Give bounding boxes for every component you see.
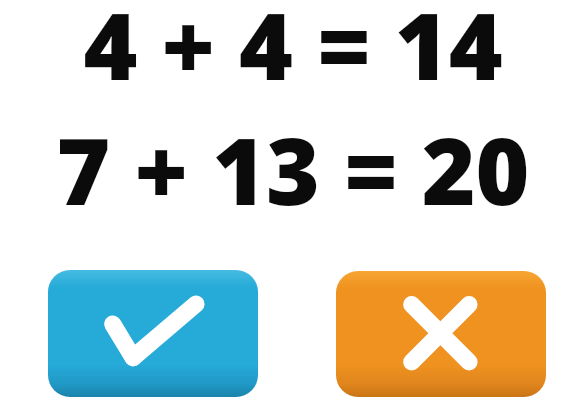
button[interactable]: Correct [48, 270, 258, 397]
button[interactable]: Wrong [336, 271, 546, 397]
staticText: 4 + 4 = 14 [83, 0, 503, 106]
staticText: 7 + 13 = 20 [56, 107, 530, 231]
